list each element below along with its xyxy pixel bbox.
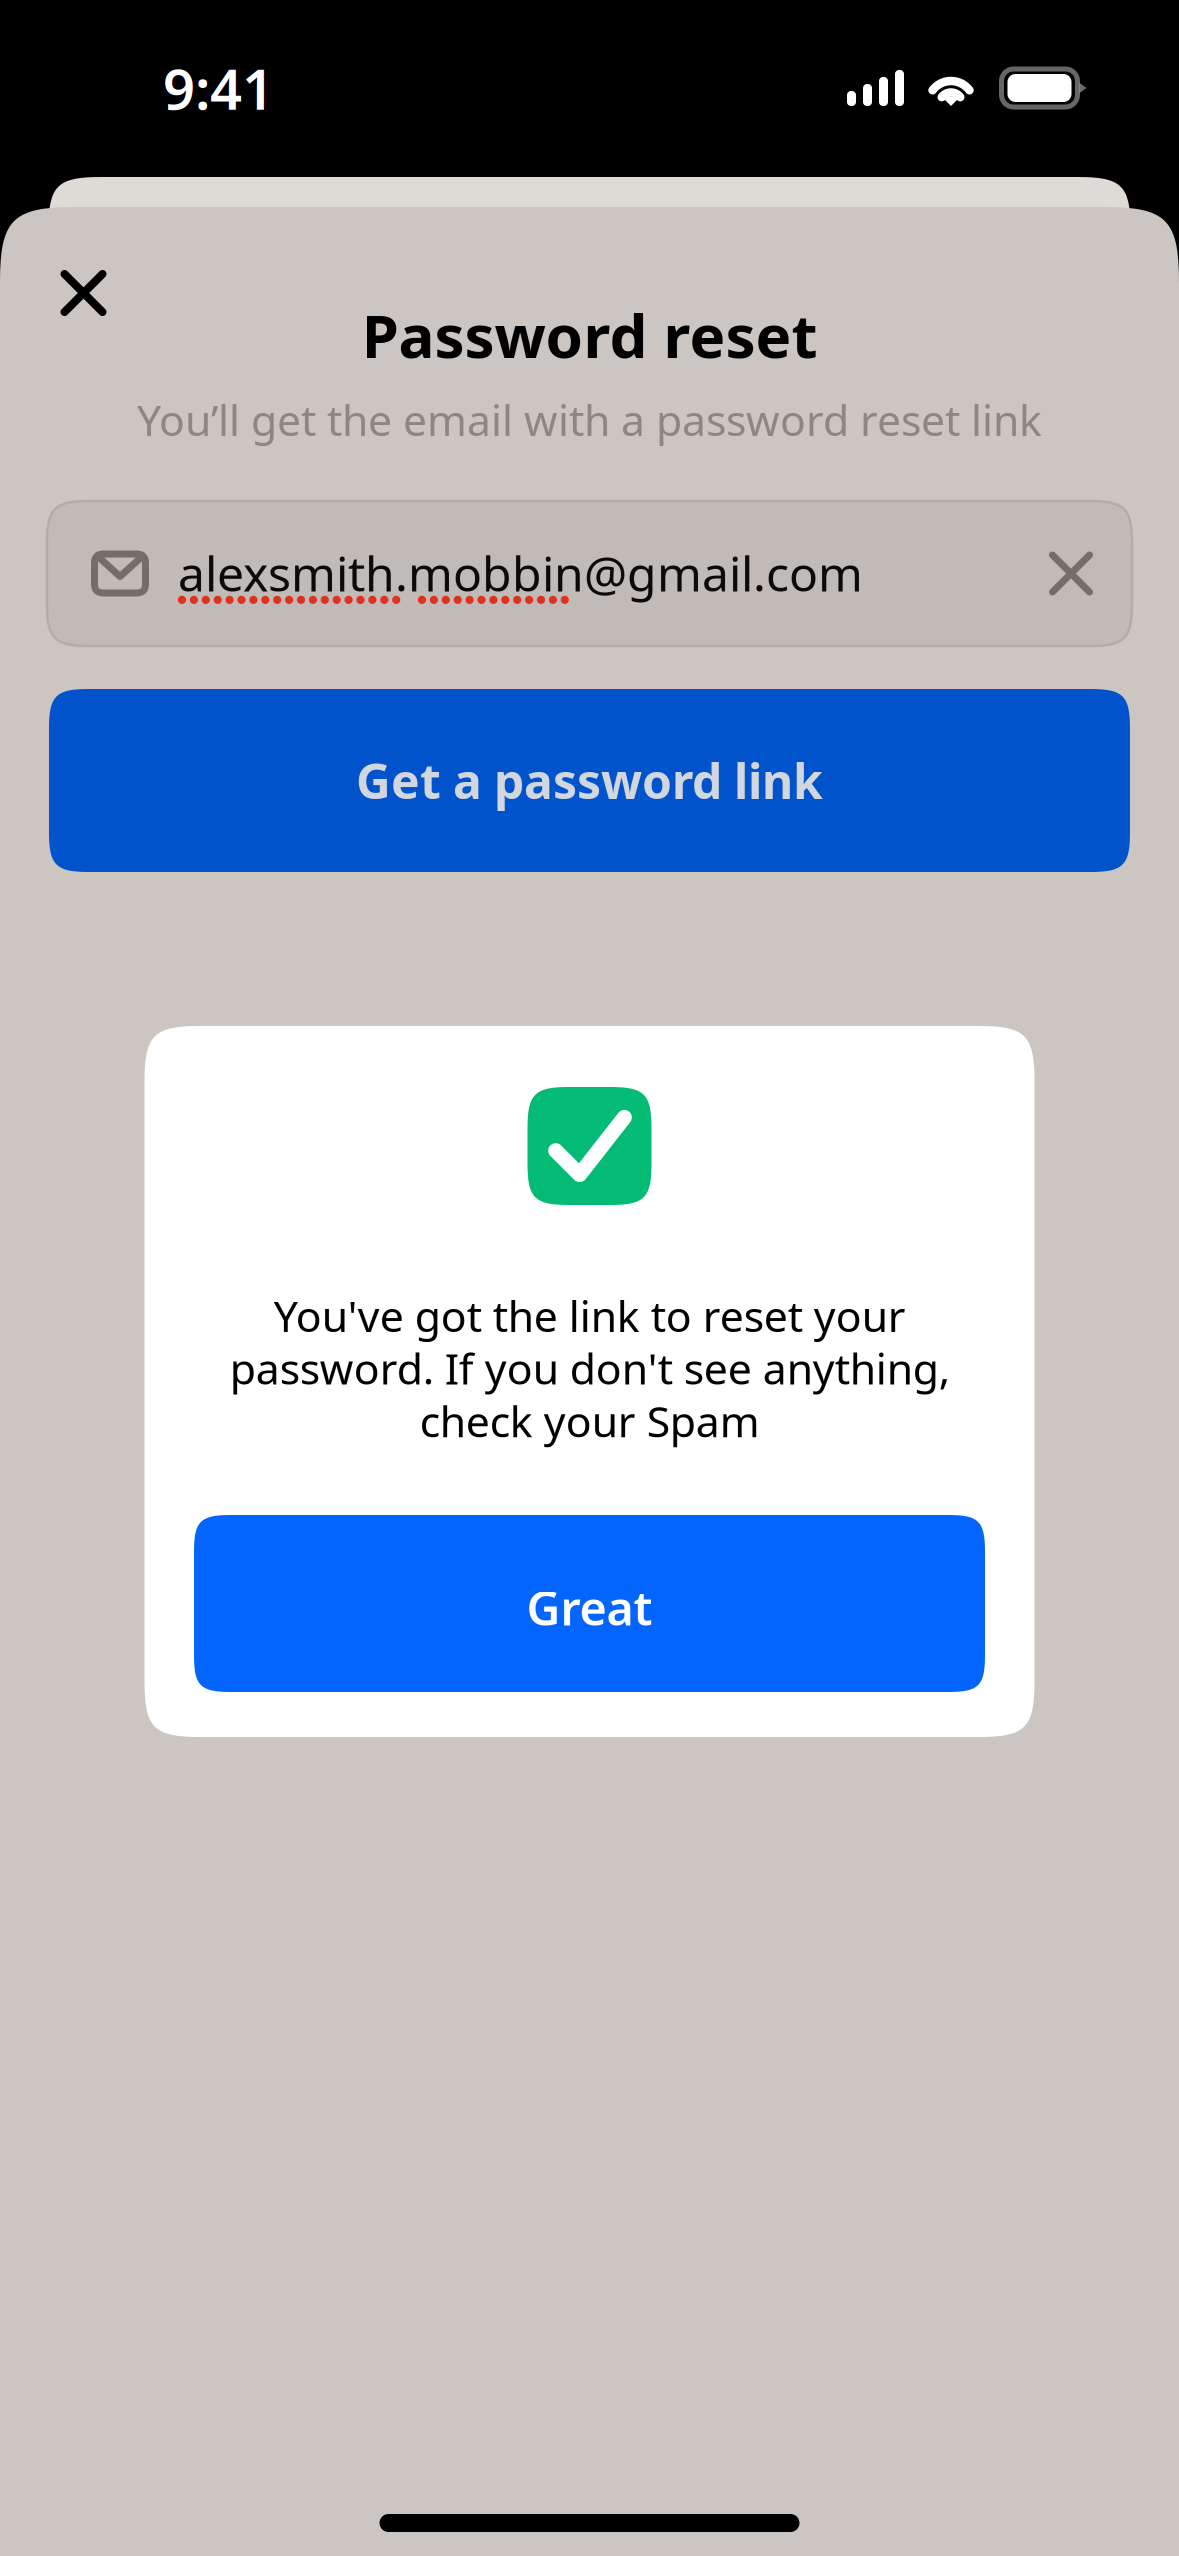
- staticText: Get a password link: [356, 749, 823, 812]
- staticText: Great: [526, 1576, 652, 1638]
- staticText: check your Spam: [419, 1392, 759, 1449]
- button[interactable]: Clear email: [1022, 524, 1120, 622]
- staticText: 9:41: [163, 51, 274, 125]
- button[interactable]: Close: [35, 245, 131, 341]
- staticText: Password reset: [361, 295, 817, 375]
- staticText: You've got the link to reset your: [273, 1287, 905, 1344]
- button[interactable]: Get a password link: [49, 689, 1130, 872]
- staticText: alexsmith.mobbin@gmail.com: [178, 541, 863, 605]
- button[interactable]: Great: [194, 1515, 985, 1692]
- staticText: password. If you don't see anything,: [229, 1340, 949, 1396]
- staticText: You’ll get the email with a password res…: [137, 391, 1042, 448]
